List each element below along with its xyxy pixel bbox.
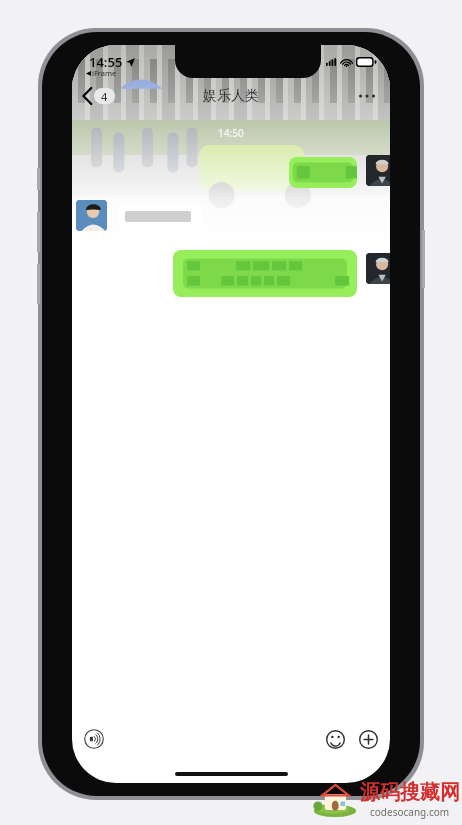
button[interactable]: Back, 4 unread	[79, 86, 119, 106]
staticText: 4	[101, 89, 108, 104]
staticText: 14:55	[89, 53, 123, 71]
staticText: 14:50	[218, 126, 244, 140]
staticText: codesocang.com	[370, 805, 450, 819]
staticText: iFrame	[92, 68, 117, 78]
button[interactable]: Voice message	[81, 726, 107, 752]
button[interactable]: Emoji	[322, 726, 348, 752]
button[interactable]: More actions	[355, 726, 381, 752]
button[interactable]	[289, 157, 357, 188]
staticText: 源码搜藏网	[360, 780, 460, 805]
button[interactable]	[173, 250, 357, 297]
button[interactable]: Sender avatar	[366, 155, 390, 186]
staticText: 娱乐人类	[203, 87, 259, 105]
button[interactable]: More options	[354, 83, 380, 109]
button[interactable]	[118, 203, 203, 230]
button[interactable]: Contact avatar	[76, 200, 107, 231]
button[interactable]: Sender avatar	[366, 253, 390, 284]
